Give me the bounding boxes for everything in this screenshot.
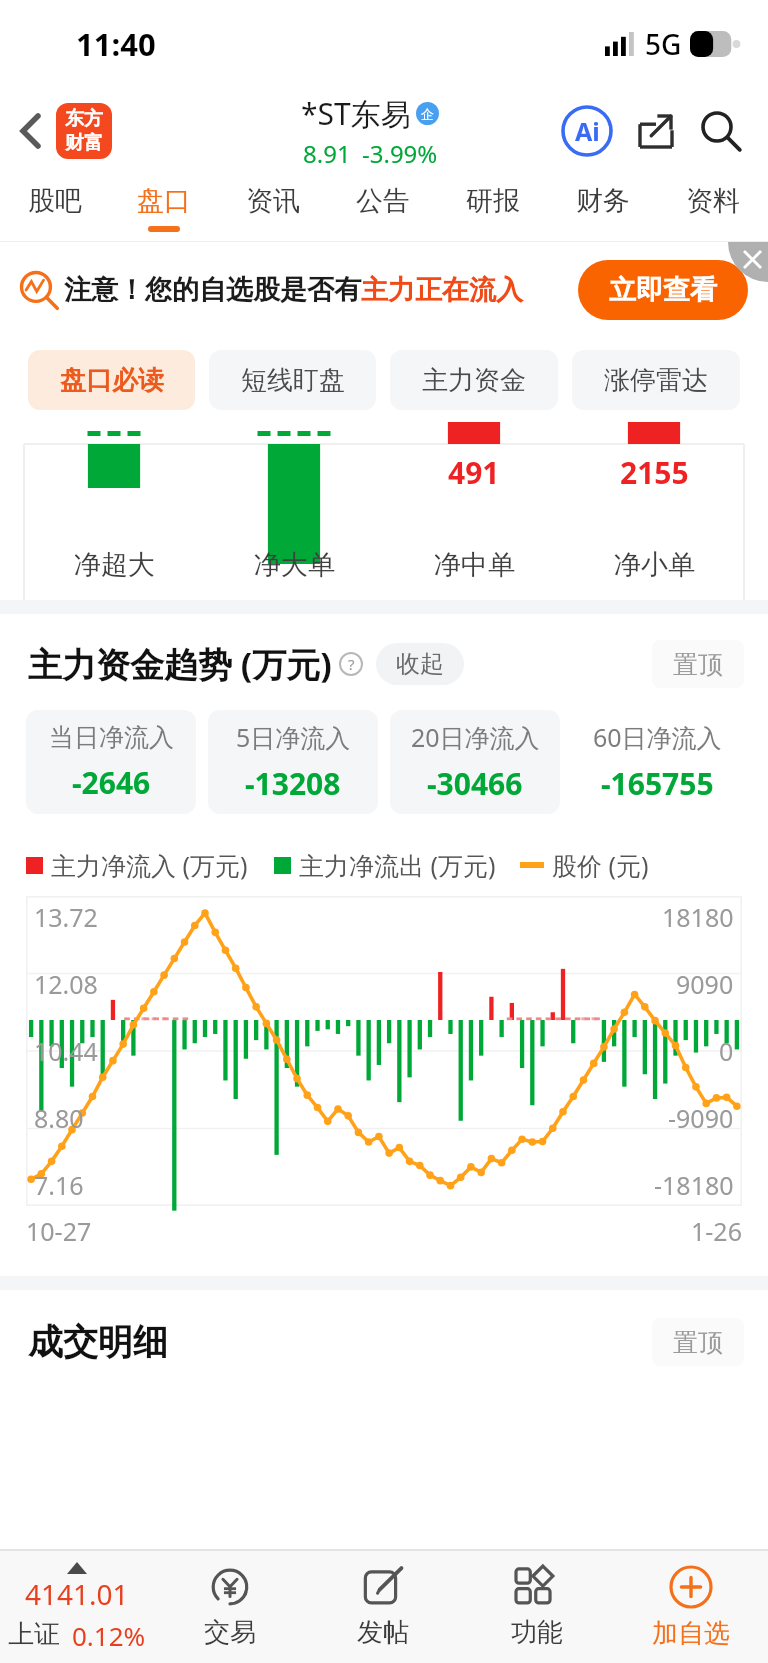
button[interactable]: AI assistant xyxy=(558,102,616,160)
button[interactable]: 资料 xyxy=(658,174,768,242)
button[interactable]: 公告 xyxy=(328,174,438,242)
button[interactable]: 收起 xyxy=(376,643,464,685)
staticText: 财务 xyxy=(576,184,630,218)
staticText: 7.16 xyxy=(34,1168,84,1202)
staticText: 8.91 xyxy=(303,137,351,170)
staticText: Ai xyxy=(575,114,600,148)
staticText: 12.08 xyxy=(34,967,98,1001)
staticText: 60日净流入 xyxy=(593,720,722,754)
button[interactable]: Help xyxy=(338,651,364,677)
staticText: 净中单 xyxy=(434,548,515,582)
staticText: ? xyxy=(348,654,355,674)
staticText: 主力资金 xyxy=(422,364,526,397)
staticText: 10-27 xyxy=(26,1214,92,1248)
staticText: 盘口必读 xyxy=(60,364,164,397)
button[interactable]: 研报 xyxy=(438,174,548,242)
staticText: 成交明细 xyxy=(28,1320,168,1364)
staticText: 研报 xyxy=(466,184,520,218)
staticText: 交易 xyxy=(204,1616,256,1649)
button[interactable]: 发帖 xyxy=(306,1551,460,1663)
staticText: 财富 xyxy=(65,131,103,155)
staticText: 18180 xyxy=(662,900,734,934)
staticText: 13.72 xyxy=(34,900,98,934)
staticText: 0.12% xyxy=(72,1618,146,1653)
staticText: 企 xyxy=(421,106,434,122)
button[interactable]: 财务 xyxy=(548,174,658,242)
staticText: -165755 xyxy=(601,763,714,804)
button[interactable]: 交易 xyxy=(153,1551,306,1663)
staticText: 发帖 xyxy=(357,1616,409,1649)
staticText: 11:40 xyxy=(76,23,156,65)
staticText: 置顶 xyxy=(673,1327,723,1358)
staticText: -30466 xyxy=(427,763,523,804)
button[interactable]: Share xyxy=(628,103,684,159)
staticText: -3.99% xyxy=(362,137,438,170)
staticText: 2155 xyxy=(620,452,689,493)
button[interactable]: 短线盯盘 xyxy=(209,350,376,410)
staticText: 8.80 xyxy=(34,1101,84,1135)
staticText: 收起 xyxy=(396,649,444,679)
staticText: 注意！您的自选股是否有 xyxy=(64,273,361,307)
staticText: 10.44 xyxy=(34,1034,98,1068)
staticText: 加自选 xyxy=(652,1617,730,1650)
staticText: 净超大 xyxy=(74,548,155,582)
staticText: 置顶 xyxy=(673,649,723,680)
staticText: 净大单 xyxy=(254,548,335,582)
staticText: 491 xyxy=(448,452,500,493)
button[interactable]: Back xyxy=(8,108,54,154)
staticText: 立即查看 xyxy=(609,273,717,307)
staticText: 5日净流入 xyxy=(236,720,351,754)
staticText: -9090 xyxy=(668,1101,734,1135)
staticText: 盘口 xyxy=(137,184,191,218)
staticText: 功能 xyxy=(511,1616,563,1649)
button[interactable]: East Money home xyxy=(56,103,112,159)
button[interactable]: 置顶 xyxy=(652,1318,744,1366)
staticText: 0 xyxy=(719,1034,734,1068)
button[interactable]: 涨停雷达 xyxy=(572,350,740,410)
staticText: 涨停雷达 xyxy=(604,364,708,397)
button[interactable]: 加自选 xyxy=(614,1551,768,1663)
staticText: -18180 xyxy=(654,1168,734,1202)
button[interactable]: 20日净流入 xyxy=(390,710,560,814)
button[interactable]: 资讯 xyxy=(218,174,328,242)
staticText: 资讯 xyxy=(246,184,300,218)
staticText: 上证 xyxy=(8,1618,60,1651)
button[interactable]: 立即查看 xyxy=(578,260,748,320)
button[interactable]: 盘口 xyxy=(109,174,218,242)
button[interactable]: 主力资金 xyxy=(390,350,558,410)
staticText: 5G xyxy=(645,25,682,63)
staticText: 9090 xyxy=(676,967,734,1001)
staticText: 公告 xyxy=(356,184,410,218)
button[interactable]: 盘口必读 xyxy=(28,350,195,410)
button[interactable]: 置顶 xyxy=(652,640,744,688)
button[interactable]: 4141.01 xyxy=(0,1551,153,1663)
button[interactable]: 当日净流入 xyxy=(26,710,196,814)
staticText: 当日净流入 xyxy=(49,722,174,753)
button[interactable]: Close banner xyxy=(728,242,768,282)
button[interactable]: Search xyxy=(692,102,750,160)
staticText: 主力净流出 (万元) xyxy=(299,848,496,882)
staticText: 主力正在流入 xyxy=(361,273,523,307)
staticText: 东方 xyxy=(65,107,103,131)
staticText: 4141.01 xyxy=(25,1575,129,1613)
staticText: *ST东易 xyxy=(301,93,411,134)
staticText: 短线盯盘 xyxy=(241,364,345,397)
staticText: 主力资金趋势 (万元) xyxy=(28,641,332,687)
staticText: -13208 xyxy=(245,763,341,804)
button[interactable]: 股吧 xyxy=(0,174,109,242)
staticText: 1-26 xyxy=(691,1214,742,1248)
button[interactable]: 5日净流入 xyxy=(208,710,378,814)
staticText: -2646 xyxy=(72,762,151,803)
button[interactable]: 60日净流入 xyxy=(572,710,742,814)
staticText: 主力净流入 (万元) xyxy=(51,848,248,882)
staticText: 股吧 xyxy=(28,184,82,218)
staticText: 20日净流入 xyxy=(411,720,540,754)
staticText: 净小单 xyxy=(614,548,695,582)
staticText: 资料 xyxy=(686,184,740,218)
staticText: 股价 (元) xyxy=(552,848,649,882)
button[interactable]: 功能 xyxy=(460,1551,614,1663)
